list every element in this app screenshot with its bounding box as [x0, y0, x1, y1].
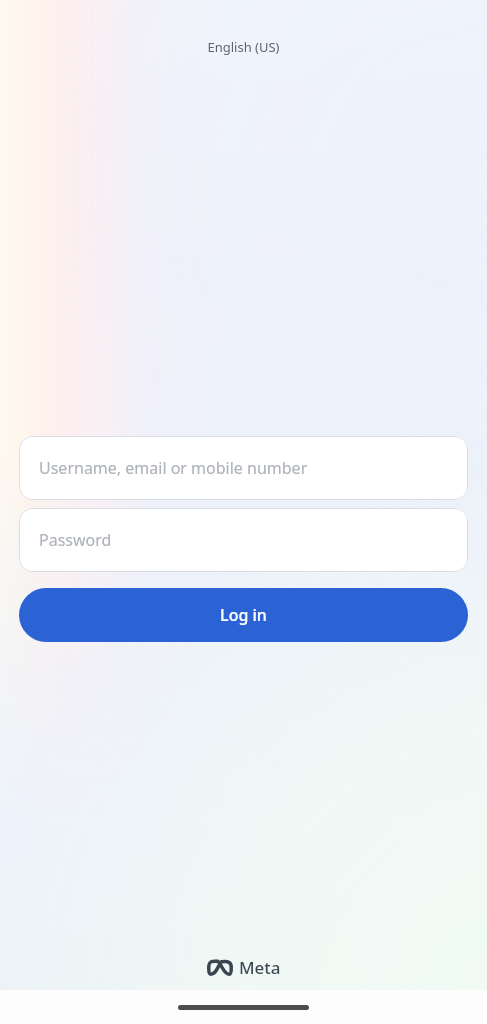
staticText: Password — [39, 529, 112, 551]
staticText: Log in — [220, 604, 267, 626]
staticText: English (US) — [207, 38, 280, 56]
staticText: Username, email or mobile number — [39, 457, 308, 479]
staticText: Meta — [239, 956, 281, 979]
button[interactable]: Password — [19, 508, 468, 572]
other: Meta logo — [207, 959, 233, 976]
button[interactable]: Meta logo — [201, 954, 287, 981]
button[interactable]: English (US) — [197, 34, 290, 60]
button[interactable]: Username, email or mobile number — [19, 436, 468, 500]
button[interactable]: Log in — [19, 588, 468, 642]
